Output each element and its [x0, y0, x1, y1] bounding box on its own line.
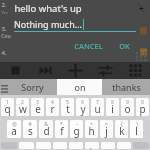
staticText: Yes	[1, 10, 8, 15]
button[interactable]: )	[130, 120, 143, 138]
button[interactable]: 0	[136, 98, 149, 116]
staticText: s	[28, 124, 33, 138]
staticText: j	[105, 124, 108, 138]
button[interactable]: v	[69, 142, 83, 149]
button[interactable]: Add	[60, 62, 90, 79]
staticText: w	[19, 102, 27, 116]
button[interactable]: 7	[91, 98, 104, 116]
button[interactable]: 6	[76, 98, 89, 116]
button[interactable]: n	[101, 142, 115, 149]
staticText: d	[43, 124, 50, 138]
button[interactable]: Stop	[0, 62, 30, 79]
staticText: 1	[6, 99, 9, 106]
button[interactable]: Suggestions menu	[0, 79, 8, 95]
staticText: q	[4, 102, 11, 116]
button[interactable]: on	[57, 79, 102, 95]
staticText: o	[124, 102, 131, 116]
staticText: 5	[66, 99, 69, 106]
staticText: thanks	[112, 81, 141, 93]
staticText: 3	[36, 99, 39, 106]
button[interactable]: Grid	[120, 62, 150, 79]
staticText: *	[60, 121, 63, 128]
button[interactable]: -	[70, 120, 83, 138]
staticText: (	[121, 121, 123, 128]
button[interactable]: Sorry	[9, 79, 55, 95]
staticText: Cou	[1, 33, 11, 40]
button[interactable]: 8	[106, 98, 119, 116]
staticText: +	[90, 121, 93, 128]
staticText: OK	[119, 41, 130, 51]
staticText: )	[136, 121, 138, 128]
button[interactable]: =	[100, 120, 113, 138]
staticText: 3.	[1, 25, 7, 33]
staticText: l	[135, 124, 138, 138]
button[interactable]: @	[7, 120, 21, 138]
staticText: e	[35, 102, 41, 116]
button[interactable]: Skip next	[30, 62, 60, 79]
button[interactable]: 3	[31, 98, 44, 116]
button[interactable]: &	[39, 120, 53, 138]
staticText: Sorry	[21, 81, 44, 93]
button[interactable]: (	[115, 120, 128, 138]
staticText: 9	[126, 99, 129, 106]
staticText: 6	[81, 99, 84, 106]
staticText: 2.	[1, 1, 7, 9]
staticText: r	[50, 102, 55, 116]
staticText: 4	[51, 99, 54, 106]
button[interactable]: z	[19, 142, 34, 149]
button[interactable]: CANCEL	[70, 39, 107, 53]
staticText: h	[88, 124, 95, 138]
staticText: k	[119, 124, 125, 138]
button[interactable]: thanks	[104, 79, 149, 95]
staticText: g	[73, 124, 80, 138]
staticText: b	[89, 145, 96, 149]
button[interactable]: 5	[61, 98, 74, 116]
staticText: a	[11, 124, 17, 138]
staticText: 8	[111, 99, 114, 106]
staticText: -	[76, 121, 78, 128]
button[interactable]: 1	[1, 98, 14, 116]
button[interactable]: 2	[16, 98, 29, 116]
button[interactable]: 4	[46, 98, 59, 116]
button[interactable]: x	[36, 142, 51, 149]
button[interactable]: m	[117, 142, 131, 149]
button[interactable]: #	[23, 120, 37, 138]
staticText: CANCEL	[74, 41, 103, 51]
staticText: u	[94, 102, 101, 116]
button[interactable]: *	[55, 120, 68, 138]
staticText: #	[28, 121, 32, 128]
staticText: on	[74, 81, 86, 93]
button[interactable]: Tune	[90, 62, 120, 79]
staticText: 2	[21, 99, 24, 106]
staticText: 7	[96, 99, 99, 106]
staticText: i	[111, 102, 114, 116]
staticText: &	[44, 121, 48, 128]
button[interactable]: +	[85, 120, 98, 138]
staticText: 4.	[1, 49, 7, 57]
staticText: y	[80, 102, 86, 116]
staticText: hello what's up	[14, 2, 82, 15]
button[interactable]: b	[85, 142, 99, 149]
staticText: @	[12, 121, 17, 128]
staticText: t	[66, 102, 70, 116]
staticText: f	[60, 124, 64, 138]
staticText: p	[139, 102, 146, 116]
staticText: Nothing much...	[14, 18, 82, 30]
button[interactable]: OK	[115, 39, 134, 53]
button[interactable]: c	[53, 142, 67, 149]
staticText: =	[105, 121, 108, 128]
button[interactable]: 9	[121, 98, 134, 116]
staticText: 0	[141, 99, 144, 106]
